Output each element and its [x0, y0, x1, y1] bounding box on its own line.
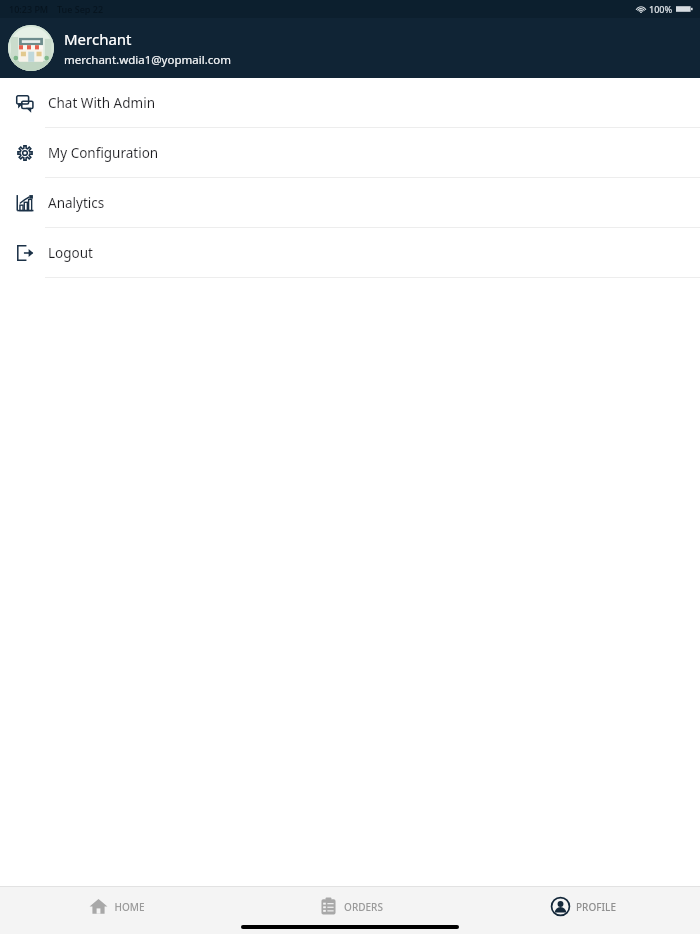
staticText: Analytics [48, 194, 105, 212]
button[interactable]: Analytics [0, 178, 700, 227]
button[interactable]: PROFILE [467, 887, 700, 934]
staticText: ORDERS [344, 900, 383, 914]
button[interactable]: My Configuration [0, 128, 700, 177]
button[interactable]: Merchant [0, 18, 700, 78]
staticText: 100% [649, 3, 673, 15]
button[interactable]: ORDERS [234, 887, 467, 934]
button[interactable]: HOME [0, 887, 234, 934]
staticText: 10:23 PM [9, 3, 49, 15]
staticText: Tue Sep 22 [57, 3, 104, 15]
button[interactable]: Chat With Admin [0, 78, 700, 127]
staticText: merchant.wdia1@yopmail.com [64, 52, 231, 68]
staticText: HOME [114, 900, 145, 914]
staticText: PROFILE [576, 900, 616, 914]
staticText: My Configuration [48, 144, 159, 162]
staticText: Logout [48, 244, 93, 262]
button[interactable]: Logout [0, 228, 700, 277]
staticText: Chat With Admin [48, 94, 155, 112]
staticText: Merchant [64, 29, 132, 49]
